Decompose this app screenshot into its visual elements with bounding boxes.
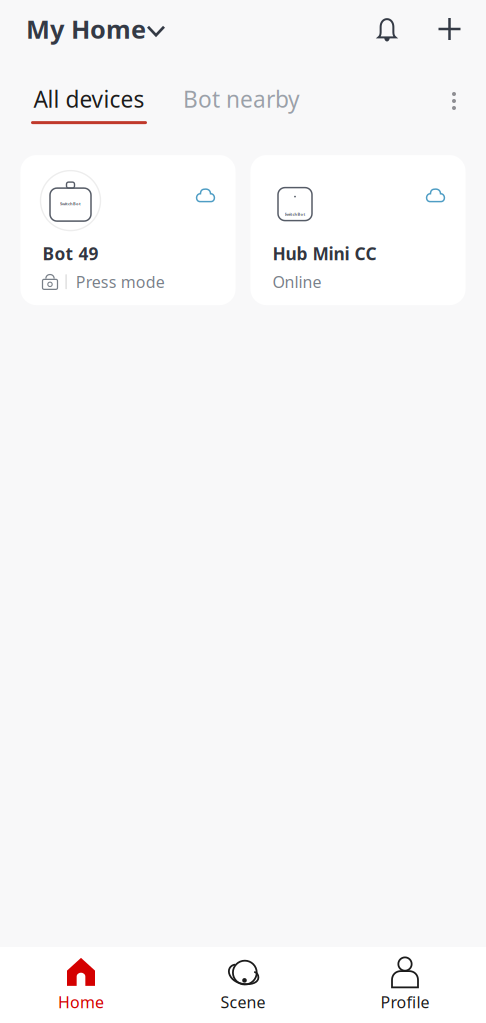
staticText: Scene <box>220 991 265 1013</box>
staticText: SwitchBot <box>60 201 81 206</box>
button[interactable]: More options <box>437 84 471 118</box>
button[interactable]: Add device <box>429 7 470 51</box>
staticText: All devices <box>33 84 144 114</box>
staticText: Hub Mini CC <box>272 242 376 265</box>
button[interactable]: Home <box>0 945 162 1023</box>
staticText: Press mode <box>76 271 165 292</box>
staticText: Profile <box>380 991 429 1013</box>
button[interactable]: All devices <box>31 84 147 124</box>
button[interactable]: Profile <box>324 945 486 1023</box>
button[interactable]: Notifications <box>361 7 413 51</box>
staticText: Home <box>58 991 104 1013</box>
button[interactable]: My Home <box>26 12 164 46</box>
staticText: Online <box>272 271 321 292</box>
staticText: Bot nearby <box>183 84 300 114</box>
staticText: Bot 49 <box>42 242 98 265</box>
staticText: My Home <box>26 12 146 46</box>
staticText: SwitchBot <box>284 211 305 217</box>
button[interactable]: Scene <box>162 945 324 1023</box>
button[interactable]: SwitchBot <box>20 155 235 305</box>
button[interactable]: Bot nearby <box>147 84 300 114</box>
button[interactable]: SwitchBot <box>250 155 465 305</box>
